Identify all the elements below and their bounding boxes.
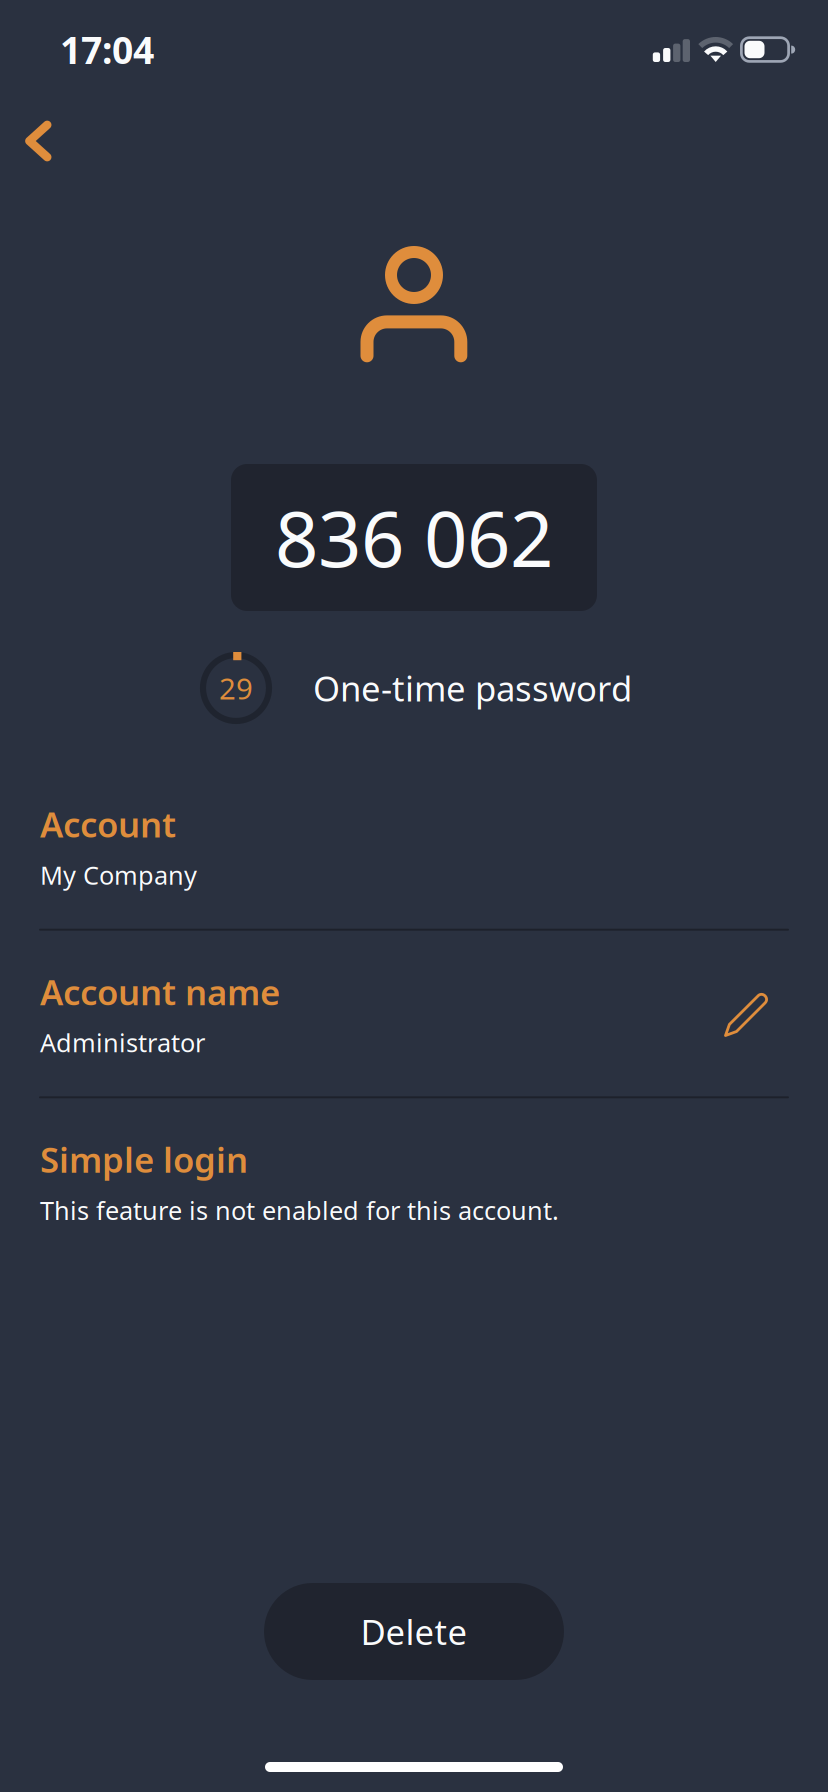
staticText: Simple login bbox=[40, 1136, 248, 1182]
staticText: My Company bbox=[40, 858, 197, 892]
staticText: Delete bbox=[360, 1608, 467, 1654]
staticText: 17:04 bbox=[60, 25, 154, 74]
button[interactable]: Edit account name bbox=[710, 977, 784, 1051]
button[interactable]: Back bbox=[0, 99, 80, 182]
staticText: One-time password bbox=[313, 665, 632, 711]
button[interactable]: Delete bbox=[264, 1583, 564, 1680]
staticText: Account bbox=[40, 801, 176, 847]
staticText: Account name bbox=[40, 969, 280, 1015]
staticText: 836 062 bbox=[275, 487, 553, 588]
staticText: Administrator bbox=[40, 1026, 205, 1059]
staticText: This feature is not enabled for this acc… bbox=[40, 1193, 559, 1227]
staticText: 29 bbox=[219, 668, 253, 707]
